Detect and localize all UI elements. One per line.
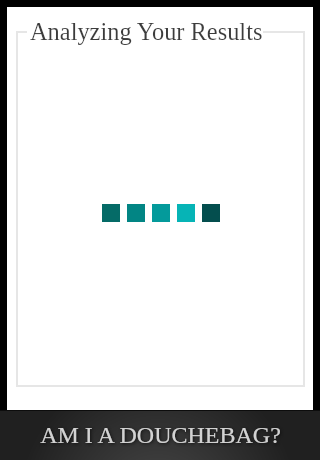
staticText: AM I A DOUCHEBAG? — [40, 422, 281, 449]
button[interactable]: AM I A DOUCHEBAG? — [0, 410, 320, 460]
staticText: Analyzing Your Results — [30, 18, 263, 45]
other: Analyzing progress — [102, 204, 220, 222]
